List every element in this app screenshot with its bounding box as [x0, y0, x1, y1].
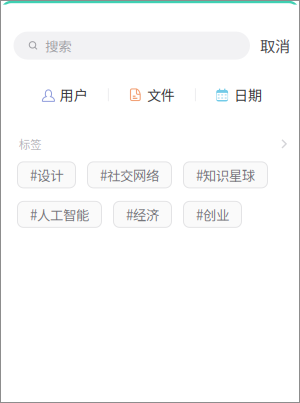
- staticText: #知识星球: [196, 165, 255, 184]
- button[interactable]: #设计: [17, 162, 75, 188]
- button[interactable]: #创业: [183, 201, 241, 227]
- staticText: 搜索: [45, 36, 71, 55]
- staticText: #人工智能: [30, 205, 89, 224]
- button[interactable]: #人工智能: [17, 201, 101, 227]
- button[interactable]: #经济: [113, 201, 171, 227]
- staticText: #经济: [126, 205, 159, 224]
- staticText: 取消: [260, 34, 290, 57]
- staticText: 日期: [234, 85, 262, 105]
- button[interactable]: 日期: [216, 85, 262, 105]
- button[interactable]: 标签: [0, 137, 300, 151]
- staticText: 用户: [60, 85, 88, 105]
- button[interactable]: 用户: [42, 85, 88, 105]
- staticText: 标签: [19, 136, 41, 152]
- staticText: #设计: [30, 165, 63, 184]
- button[interactable]: #知识星球: [183, 162, 267, 188]
- staticText: 文件: [147, 85, 175, 105]
- button[interactable]: 取消: [260, 34, 290, 57]
- staticText: #创业: [196, 205, 229, 224]
- button[interactable]: #社交网络: [87, 162, 171, 188]
- staticText: #社交网络: [100, 165, 159, 184]
- button[interactable]: 文件: [129, 85, 175, 105]
